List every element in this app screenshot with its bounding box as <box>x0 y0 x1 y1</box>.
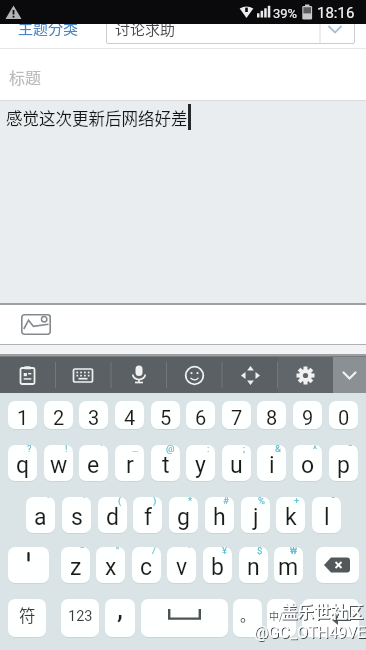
button[interactable]: l <box>312 497 341 533</box>
staticText: ˉ <box>80 547 85 556</box>
staticText: ₩ <box>290 547 298 556</box>
button[interactable] <box>278 357 334 393</box>
button[interactable] <box>141 599 228 637</box>
button[interactable]: t <box>151 445 180 481</box>
staticText: % <box>258 497 265 506</box>
button[interactable]: u <box>222 445 251 481</box>
button[interactable]: 符 <box>8 599 46 637</box>
staticText: h <box>213 504 226 531</box>
staticText: k <box>285 504 297 531</box>
staticText: @GC_OTH49VE <box>255 624 366 643</box>
button[interactable]: 9 <box>293 401 322 429</box>
button[interactable]: e <box>79 445 108 481</box>
staticText: 讨论求助 <box>115 18 176 40</box>
button[interactable]: k <box>276 497 305 533</box>
button[interactable]: q <box>8 445 37 481</box>
button[interactable]: h <box>205 497 234 533</box>
staticText: ? <box>27 445 32 454</box>
button[interactable]: r <box>115 445 144 481</box>
staticText: 1 <box>17 406 29 429</box>
staticText: ` <box>100 445 103 454</box>
button[interactable]: v <box>167 547 196 583</box>
staticText: g <box>177 504 190 531</box>
staticText: ˉ <box>348 445 353 454</box>
staticText: y <box>195 452 206 479</box>
staticText: ! <box>65 445 68 454</box>
button[interactable]: x <box>96 547 125 583</box>
button[interactable]: 4 <box>115 401 144 429</box>
button[interactable]: d <box>98 497 127 533</box>
staticText: v <box>176 554 188 581</box>
staticText: m <box>278 554 299 581</box>
staticText: s <box>71 504 83 531</box>
button[interactable] <box>333 357 366 393</box>
button[interactable]: 3 <box>79 401 108 429</box>
staticText: 9 <box>302 406 314 429</box>
button[interactable]: , <box>105 599 135 637</box>
staticText: e <box>87 452 100 479</box>
staticText: 39% <box>273 6 298 21</box>
staticText: 7 <box>231 406 243 429</box>
button[interactable]: 。 <box>233 599 262 637</box>
staticText: 符 <box>19 603 36 627</box>
button[interactable]: w <box>44 445 73 481</box>
button[interactable]: b <box>203 547 232 583</box>
staticText: " <box>116 547 120 556</box>
button[interactable]: s <box>62 497 91 533</box>
staticText: o <box>301 452 315 479</box>
button[interactable]: 0 <box>329 401 358 429</box>
button[interactable]: m <box>274 547 303 583</box>
staticText: ^ <box>313 445 317 454</box>
staticText: t <box>162 452 170 479</box>
button[interactable]: 123 <box>61 599 99 637</box>
staticText: 18:16 <box>317 4 355 22</box>
staticText: + <box>294 497 300 506</box>
staticText: j <box>253 504 259 531</box>
staticText: 标题 <box>9 65 42 88</box>
staticText: ˙ <box>47 497 50 506</box>
staticText: x <box>105 554 117 581</box>
staticText: 6 <box>195 406 207 429</box>
button[interactable]: 2 <box>44 401 73 429</box>
button[interactable]: c <box>132 547 161 583</box>
button[interactable]: f <box>133 497 162 533</box>
staticText: 感觉这次更新后网络好差 <box>6 106 188 130</box>
button[interactable] <box>316 547 359 583</box>
staticText: 盖乐世社区 <box>282 600 365 624</box>
button[interactable]: i <box>257 445 286 481</box>
button[interactable]: n <box>239 547 268 583</box>
button[interactable]: 中/En <box>267 599 296 637</box>
staticText: 中/En <box>269 608 295 622</box>
staticText: 123 <box>68 608 93 625</box>
button[interactable]: p <box>329 445 358 481</box>
staticText: 8 <box>266 406 278 429</box>
staticText: … <box>132 445 139 454</box>
staticText: 0 <box>338 406 350 429</box>
staticText: : <box>207 445 210 454</box>
button[interactable]: 8 <box>257 401 286 429</box>
button[interactable]: 6 <box>186 401 215 429</box>
button[interactable]: o <box>293 445 322 481</box>
button[interactable]: 讨论求助 <box>106 13 355 44</box>
button[interactable] <box>14 308 58 340</box>
button[interactable]: j <box>241 497 270 533</box>
staticText: 。 <box>240 604 256 626</box>
staticText: n <box>247 554 260 581</box>
button[interactable]: a <box>26 497 55 533</box>
staticText: c <box>140 554 153 581</box>
button[interactable] <box>8 547 49 583</box>
staticText: u <box>230 452 243 479</box>
button[interactable]: g <box>169 497 198 533</box>
staticText: 5 <box>160 406 172 429</box>
button[interactable]: 1 <box>8 401 37 429</box>
staticText: z <box>70 554 82 581</box>
button[interactable]: z <box>61 547 90 583</box>
staticText: 盖乐世社区 <box>281 599 364 623</box>
button[interactable] <box>302 599 359 637</box>
staticText: ¥ <box>222 547 227 556</box>
button[interactable]: y <box>186 445 215 481</box>
button[interactable]: 7 <box>222 401 251 429</box>
button[interactable]: 5 <box>151 401 180 429</box>
staticText: p <box>337 452 350 479</box>
staticText: a <box>34 504 47 531</box>
